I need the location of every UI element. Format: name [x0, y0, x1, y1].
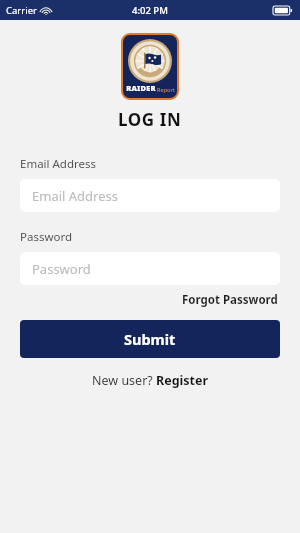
staticText: Email Address [20, 156, 97, 172]
button[interactable]: New user? Register [88, 370, 213, 391]
button[interactable]: Forgot Password [180, 290, 280, 310]
button[interactable]: Password [20, 252, 280, 285]
staticText: Report [157, 86, 175, 93]
staticText: Password [32, 260, 91, 278]
staticText: New user? Register [92, 372, 209, 389]
button[interactable]: Email Address [20, 179, 280, 212]
staticText: Email Address [32, 187, 118, 205]
staticText: RAIDER [126, 83, 156, 93]
button[interactable]: Raider Report logo [121, 33, 179, 100]
staticText: Password [20, 229, 73, 245]
staticText: Forgot Password [182, 292, 278, 308]
button[interactable]: Submit [20, 320, 280, 358]
staticText: Carrier [6, 4, 37, 17]
staticText: LOG IN [118, 108, 182, 131]
staticText: Submit [124, 329, 176, 349]
staticText: 4:02 PM [132, 4, 168, 17]
